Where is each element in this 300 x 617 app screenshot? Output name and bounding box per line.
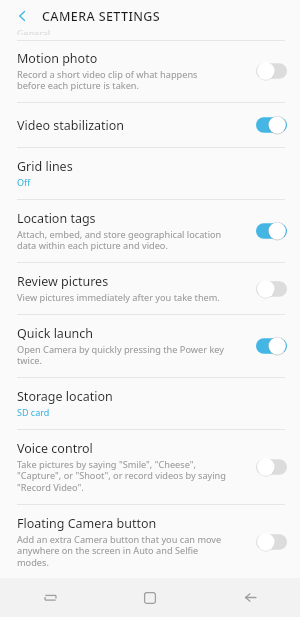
button[interactable]: Video stabilization bbox=[0, 103, 300, 147]
staticText: Motion photo bbox=[17, 50, 98, 67]
button[interactable]: Review pictures bbox=[0, 263, 300, 314]
staticText: Attach, embed, and store geographical lo… bbox=[17, 228, 227, 252]
button[interactable] bbox=[256, 221, 287, 241]
staticText: CAMERA SETTINGS bbox=[42, 8, 161, 25]
button[interactable]: Recents bbox=[0, 578, 100, 617]
button[interactable] bbox=[256, 457, 287, 477]
staticText: Off bbox=[17, 176, 287, 188]
staticText: Record a short video clip of what happen… bbox=[17, 68, 227, 92]
staticText: Add an extra Camera button that you can … bbox=[17, 533, 227, 568]
staticText: General bbox=[17, 27, 51, 35]
staticText: Voice control bbox=[17, 440, 93, 457]
button[interactable]: Home bbox=[100, 578, 200, 617]
staticText: Review pictures bbox=[17, 273, 109, 290]
staticText: Storage location bbox=[17, 388, 113, 405]
button[interactable] bbox=[256, 532, 287, 552]
button[interactable]: Back bbox=[8, 2, 36, 30]
button[interactable] bbox=[256, 279, 287, 299]
button[interactable]: Back bbox=[200, 578, 300, 617]
button[interactable]: Quick launch bbox=[0, 315, 300, 377]
staticText: Open Camera by quickly pressing the Powe… bbox=[17, 343, 227, 367]
button[interactable] bbox=[256, 336, 287, 356]
button[interactable]: Motion photo bbox=[0, 41, 300, 102]
button[interactable]: Floating Camera button bbox=[0, 505, 300, 578]
button[interactable]: Grid lines bbox=[0, 148, 300, 199]
staticText: Video stabilization bbox=[17, 117, 125, 134]
staticText: View pictures immediately after you take… bbox=[17, 291, 227, 304]
staticText: Grid lines bbox=[17, 158, 73, 175]
staticText: Quick launch bbox=[17, 325, 94, 342]
staticText: Location tags bbox=[17, 210, 96, 227]
button[interactable] bbox=[256, 61, 287, 81]
staticText: SD card bbox=[17, 406, 287, 418]
button[interactable]: General bbox=[0, 32, 300, 40]
staticText: Floating Camera button bbox=[17, 515, 157, 532]
button[interactable]: Location tags bbox=[0, 200, 300, 262]
staticText: Take pictures by saying "Smile", "Cheese… bbox=[17, 458, 227, 494]
button[interactable]: Voice control bbox=[0, 430, 300, 504]
button[interactable] bbox=[256, 115, 287, 135]
button[interactable]: Storage location bbox=[0, 378, 300, 429]
